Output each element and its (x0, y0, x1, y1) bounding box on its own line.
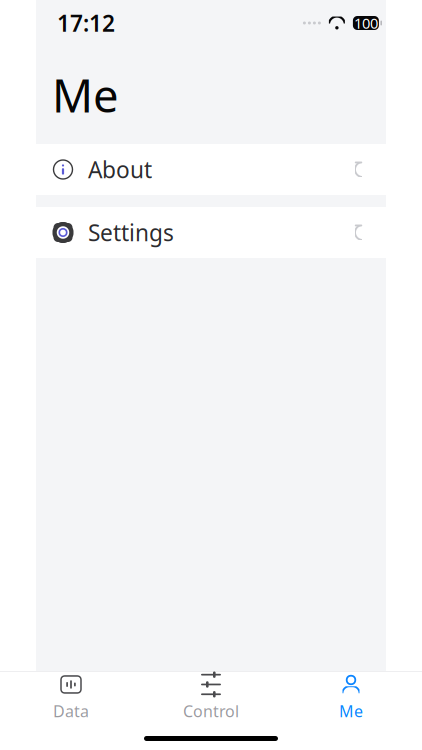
button[interactable]: Control (141, 672, 281, 724)
button[interactable]: Data (1, 672, 141, 724)
staticText: Control (183, 700, 239, 722)
button[interactable]: About (36, 144, 386, 195)
staticText: 100 (354, 13, 378, 33)
button[interactable]: Settings (36, 207, 386, 258)
staticText: Me (52, 65, 119, 125)
button[interactable]: Me (281, 672, 421, 724)
staticText: 17:12 (57, 8, 115, 38)
staticText: Settings (88, 217, 174, 247)
staticText: Me (339, 700, 363, 722)
staticText: Data (53, 700, 89, 722)
staticText: About (88, 154, 152, 184)
